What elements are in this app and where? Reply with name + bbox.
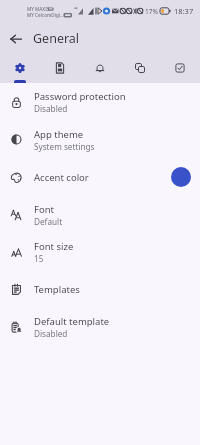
staticText: System settings xyxy=(34,141,95,152)
button[interactable]: Default template xyxy=(0,308,200,346)
staticText: Default xyxy=(34,216,63,227)
staticText: Default template xyxy=(34,315,110,328)
staticText: Accent color xyxy=(34,171,89,184)
button[interactable]: App theme xyxy=(0,121,200,158)
staticText: Templates xyxy=(34,283,80,296)
staticText: Disabled xyxy=(34,103,68,114)
button[interactable]: Navigate up xyxy=(5,28,26,49)
staticText: 15 xyxy=(34,253,44,264)
button[interactable]: Password protection xyxy=(0,83,200,121)
button[interactable]: Backup xyxy=(40,54,80,83)
staticText: Disabled xyxy=(34,328,68,339)
button[interactable]: Settings xyxy=(0,54,40,83)
button[interactable]: Reminders xyxy=(80,54,120,83)
staticText: MY CelcomDigi… xyxy=(27,12,64,18)
staticText: 17% xyxy=(145,7,158,16)
button[interactable]: Templates xyxy=(0,271,200,308)
button[interactable]: Accent color xyxy=(0,158,200,196)
staticText: MY MAXIS xyxy=(27,6,50,12)
staticText: Font size xyxy=(34,240,74,253)
staticText: Font xyxy=(34,203,54,216)
staticText: Password protection xyxy=(34,90,126,103)
button[interactable]: Font xyxy=(0,196,200,233)
button[interactable]: Checklists xyxy=(160,54,200,83)
button[interactable]: Font size xyxy=(0,233,200,271)
button[interactable]: Duplicates xyxy=(120,54,160,83)
staticText: 18:37 xyxy=(174,6,194,16)
button[interactable]: Choose accent color xyxy=(171,167,191,187)
staticText: App theme xyxy=(34,128,84,141)
staticText: General xyxy=(33,30,80,47)
